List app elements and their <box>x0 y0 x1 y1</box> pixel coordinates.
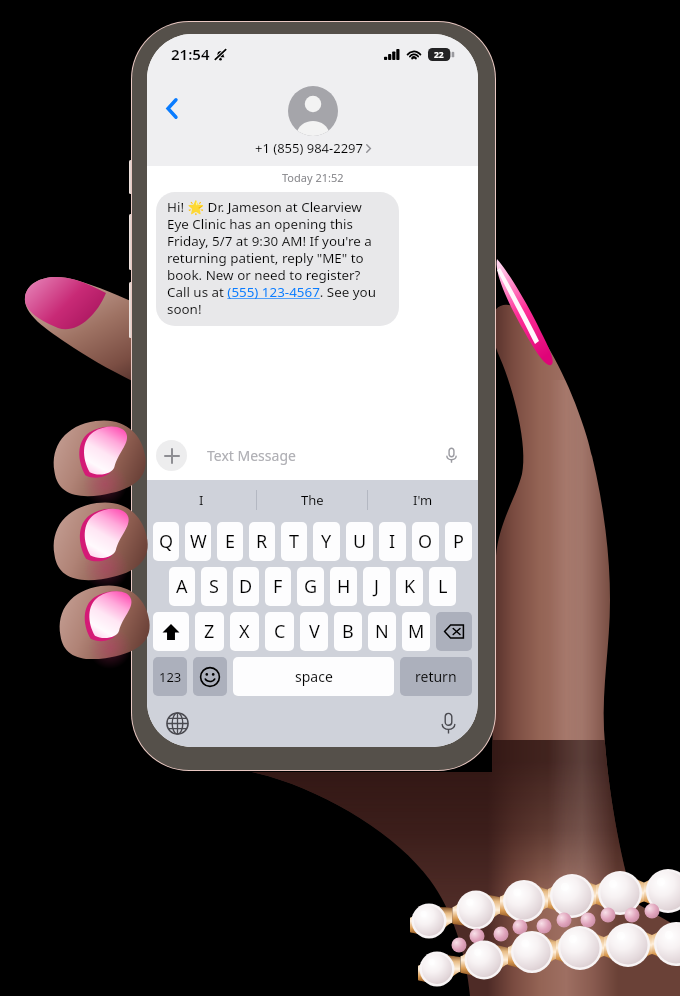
staticText: B <box>342 619 354 644</box>
staticText: return <box>415 667 457 686</box>
staticText: M <box>408 619 425 644</box>
staticText: 22 <box>434 49 444 61</box>
staticText: C <box>274 619 286 644</box>
button[interactable]: S <box>201 567 227 606</box>
staticText: Q <box>159 529 174 554</box>
button[interactable]: Change keyboard <box>161 707 193 739</box>
staticText: The <box>301 491 324 509</box>
button[interactable]: The <box>257 491 367 509</box>
staticText: Y <box>321 529 332 554</box>
button[interactable]: K <box>396 567 423 606</box>
staticText: J <box>374 574 379 599</box>
staticText: I <box>199 491 204 509</box>
staticText: Z <box>204 619 215 644</box>
button[interactable]: A <box>169 567 195 606</box>
button[interactable]: I <box>147 491 256 509</box>
button[interactable]: B <box>334 612 362 651</box>
staticText: F <box>273 574 283 599</box>
staticText: X <box>239 619 250 644</box>
staticText: D <box>239 574 253 599</box>
staticText: S <box>209 574 219 599</box>
button[interactable]: Dictate <box>432 707 464 739</box>
button[interactable]: Shift <box>153 612 189 651</box>
staticText: I'm <box>413 491 433 509</box>
button[interactable]: T <box>281 522 307 561</box>
staticText: K <box>404 574 416 599</box>
staticText: T <box>289 529 300 554</box>
button[interactable]: X <box>230 612 259 651</box>
button[interactable]: E <box>217 522 243 561</box>
button[interactable]: V <box>300 612 328 651</box>
staticText: Today 21:52 <box>282 170 344 185</box>
button[interactable]: W <box>185 522 211 561</box>
button[interactable]: Z <box>195 612 224 651</box>
staticText: space <box>295 667 333 686</box>
button[interactable]: Y <box>313 522 340 561</box>
staticText: I <box>389 529 396 554</box>
staticText: 123 <box>159 668 182 686</box>
button[interactable]: L <box>429 567 456 606</box>
staticText: L <box>438 574 448 599</box>
staticText: Text Message <box>207 446 296 465</box>
button[interactable]: U <box>346 522 373 561</box>
button[interactable]: Text Message <box>195 439 469 471</box>
button[interactable]: D <box>233 567 259 606</box>
staticText: Hi! 🌟 Dr. Jameson at Clearview Eye Clini… <box>167 198 377 318</box>
staticText: E <box>225 529 236 554</box>
staticText: +1 (855) 984-2297 <box>255 139 363 157</box>
button[interactable]: Emoji <box>193 657 227 696</box>
staticText: R <box>256 529 268 554</box>
staticText: A <box>176 574 188 599</box>
button[interactable]: F <box>265 567 291 606</box>
button[interactable]: Backspace <box>436 612 472 651</box>
button[interactable]: Back <box>155 91 189 125</box>
staticText: U <box>353 529 367 554</box>
staticText: G <box>304 574 318 599</box>
button[interactable]: N <box>368 612 396 651</box>
button[interactable]: I <box>379 522 406 561</box>
button[interactable]: Q <box>153 522 179 561</box>
staticText: W <box>190 529 207 554</box>
button[interactable]: O <box>412 522 439 561</box>
button[interactable]: 123 <box>153 657 187 696</box>
button[interactable]: H <box>330 567 357 606</box>
button[interactable]: space <box>233 657 394 696</box>
staticText: N <box>375 619 389 644</box>
button[interactable]: C <box>265 612 294 651</box>
button[interactable]: J <box>363 567 390 606</box>
button[interactable]: return <box>400 657 472 696</box>
button[interactable]: P <box>445 522 472 561</box>
staticText: O <box>418 529 433 554</box>
button[interactable]: M <box>402 612 430 651</box>
staticText: V <box>309 619 320 644</box>
button[interactable]: G <box>297 567 324 606</box>
button[interactable]: R <box>249 522 275 561</box>
staticText: 21:54 <box>171 44 210 64</box>
staticText: P <box>453 529 464 554</box>
button[interactable]: I'm <box>368 491 478 509</box>
button[interactable]: Add attachment <box>156 440 187 471</box>
staticText: H <box>337 574 351 599</box>
